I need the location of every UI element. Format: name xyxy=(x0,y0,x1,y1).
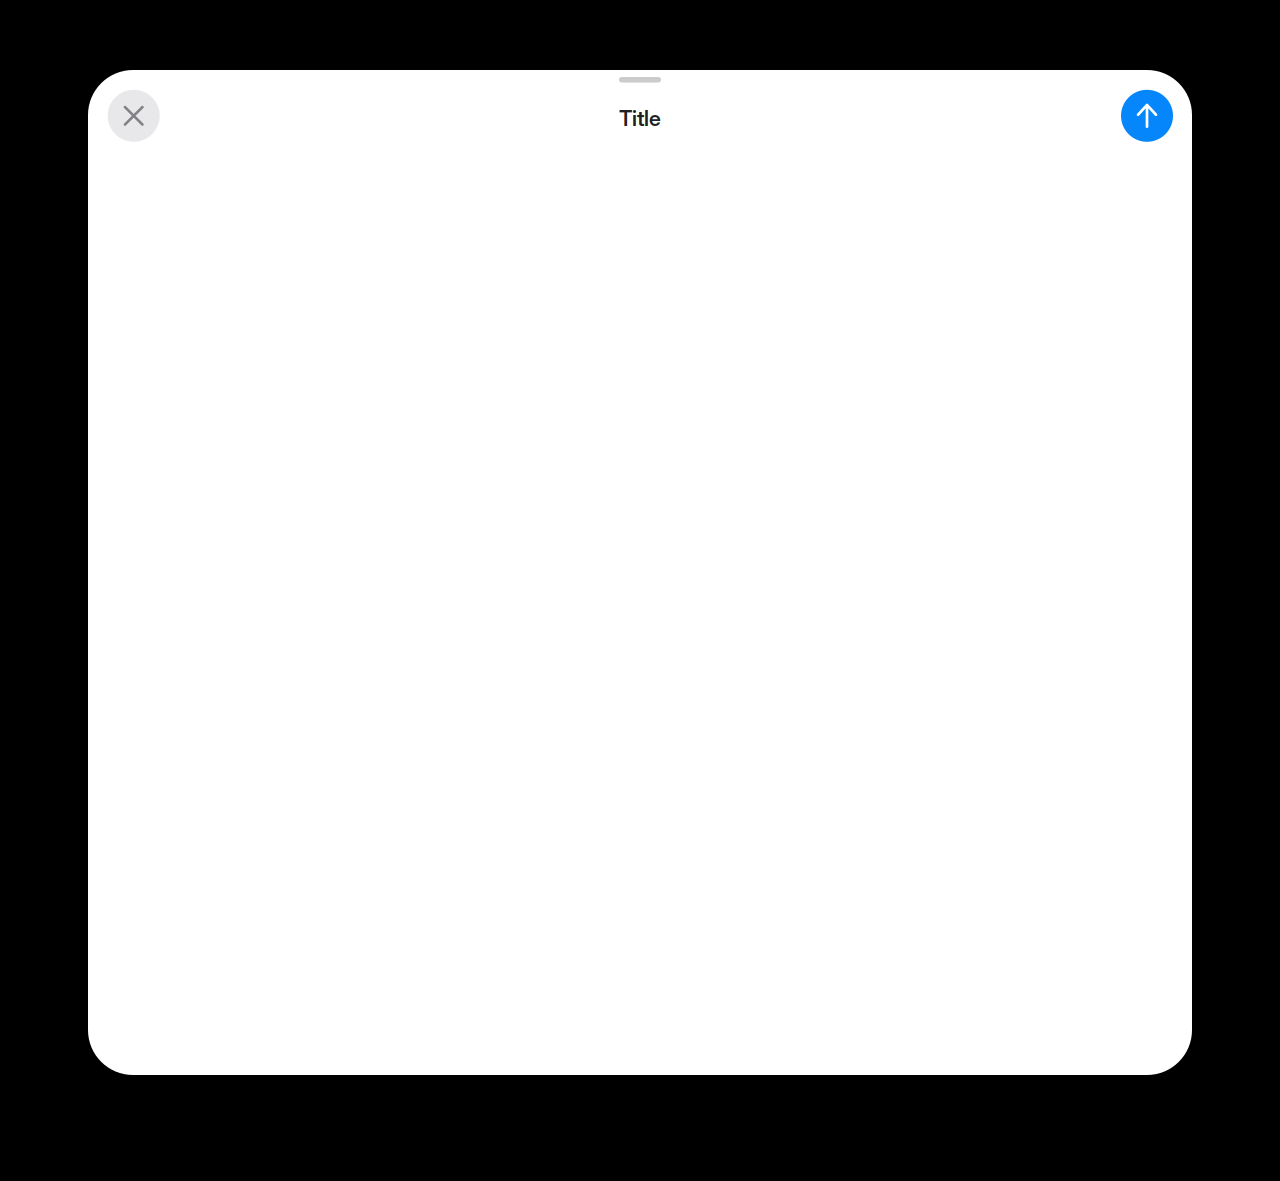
button[interactable]: Close xyxy=(108,90,160,142)
button[interactable]: Share xyxy=(1121,90,1173,142)
staticText: Title xyxy=(619,105,661,131)
